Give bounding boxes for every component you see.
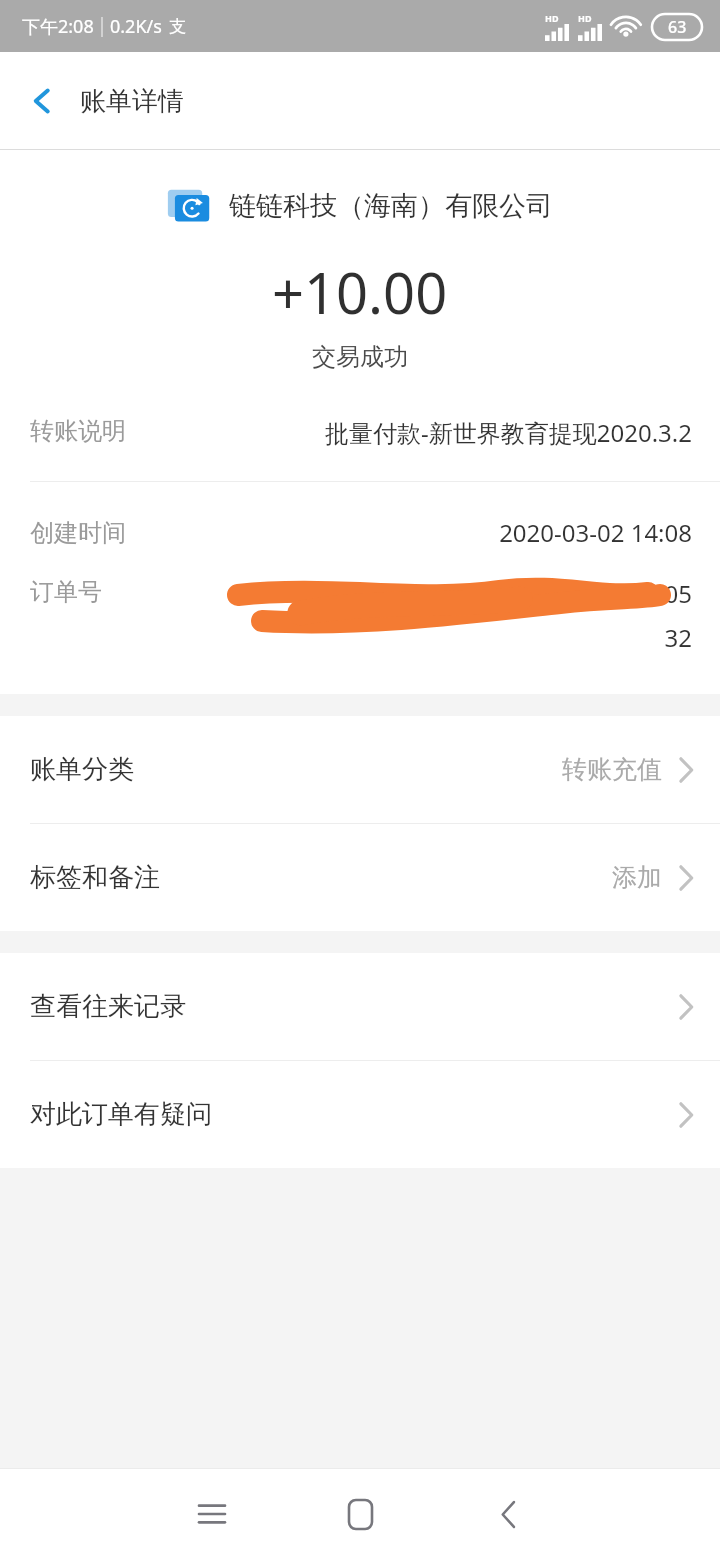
staticText: 下午2:08 <box>22 14 94 39</box>
staticText: 支 <box>169 16 186 37</box>
staticText: 2020030212382915567865569705 32 <box>180 577 692 654</box>
staticText: 链链科技（海南）有限公司 <box>229 189 553 223</box>
staticText: 标签和备注 <box>30 861 160 894</box>
button[interactable]: 最近任务 <box>164 1468 260 1560</box>
button[interactable]: 标签和备注 <box>0 824 720 931</box>
staticText: 添加 <box>612 862 662 893</box>
staticText: 转账充值 <box>562 754 662 785</box>
staticText: 63 <box>668 16 687 38</box>
staticText: 账单分类 <box>30 753 134 786</box>
staticText: 订单号 <box>30 577 180 607</box>
staticText: 创建时间 <box>30 518 216 548</box>
button[interactable]: 查看往来记录 <box>0 953 720 1060</box>
button[interactable]: 主屏幕 <box>312 1468 408 1560</box>
staticText: 2020-03-02 14:08 <box>216 516 692 549</box>
staticText: 交易成功 <box>312 342 408 372</box>
staticText: 账单详情 <box>80 85 184 118</box>
button[interactable]: 返回 <box>14 73 70 129</box>
staticText: 转账说明 <box>30 416 216 446</box>
staticText: 0.2K/s <box>110 14 162 39</box>
staticText: 对此订单有疑问 <box>30 1098 212 1131</box>
button[interactable]: 对此订单有疑问 <box>0 1061 720 1168</box>
button[interactable]: 返回 <box>460 1468 556 1560</box>
staticText: +10.00 <box>272 254 448 330</box>
staticText: 查看往来记录 <box>30 990 186 1023</box>
staticText: HD <box>545 12 559 24</box>
button[interactable]: 账单分类 <box>0 716 720 823</box>
staticText: 批量付款-新世界教育提现2020.3.2 <box>216 416 692 449</box>
staticText: HD <box>578 12 592 24</box>
